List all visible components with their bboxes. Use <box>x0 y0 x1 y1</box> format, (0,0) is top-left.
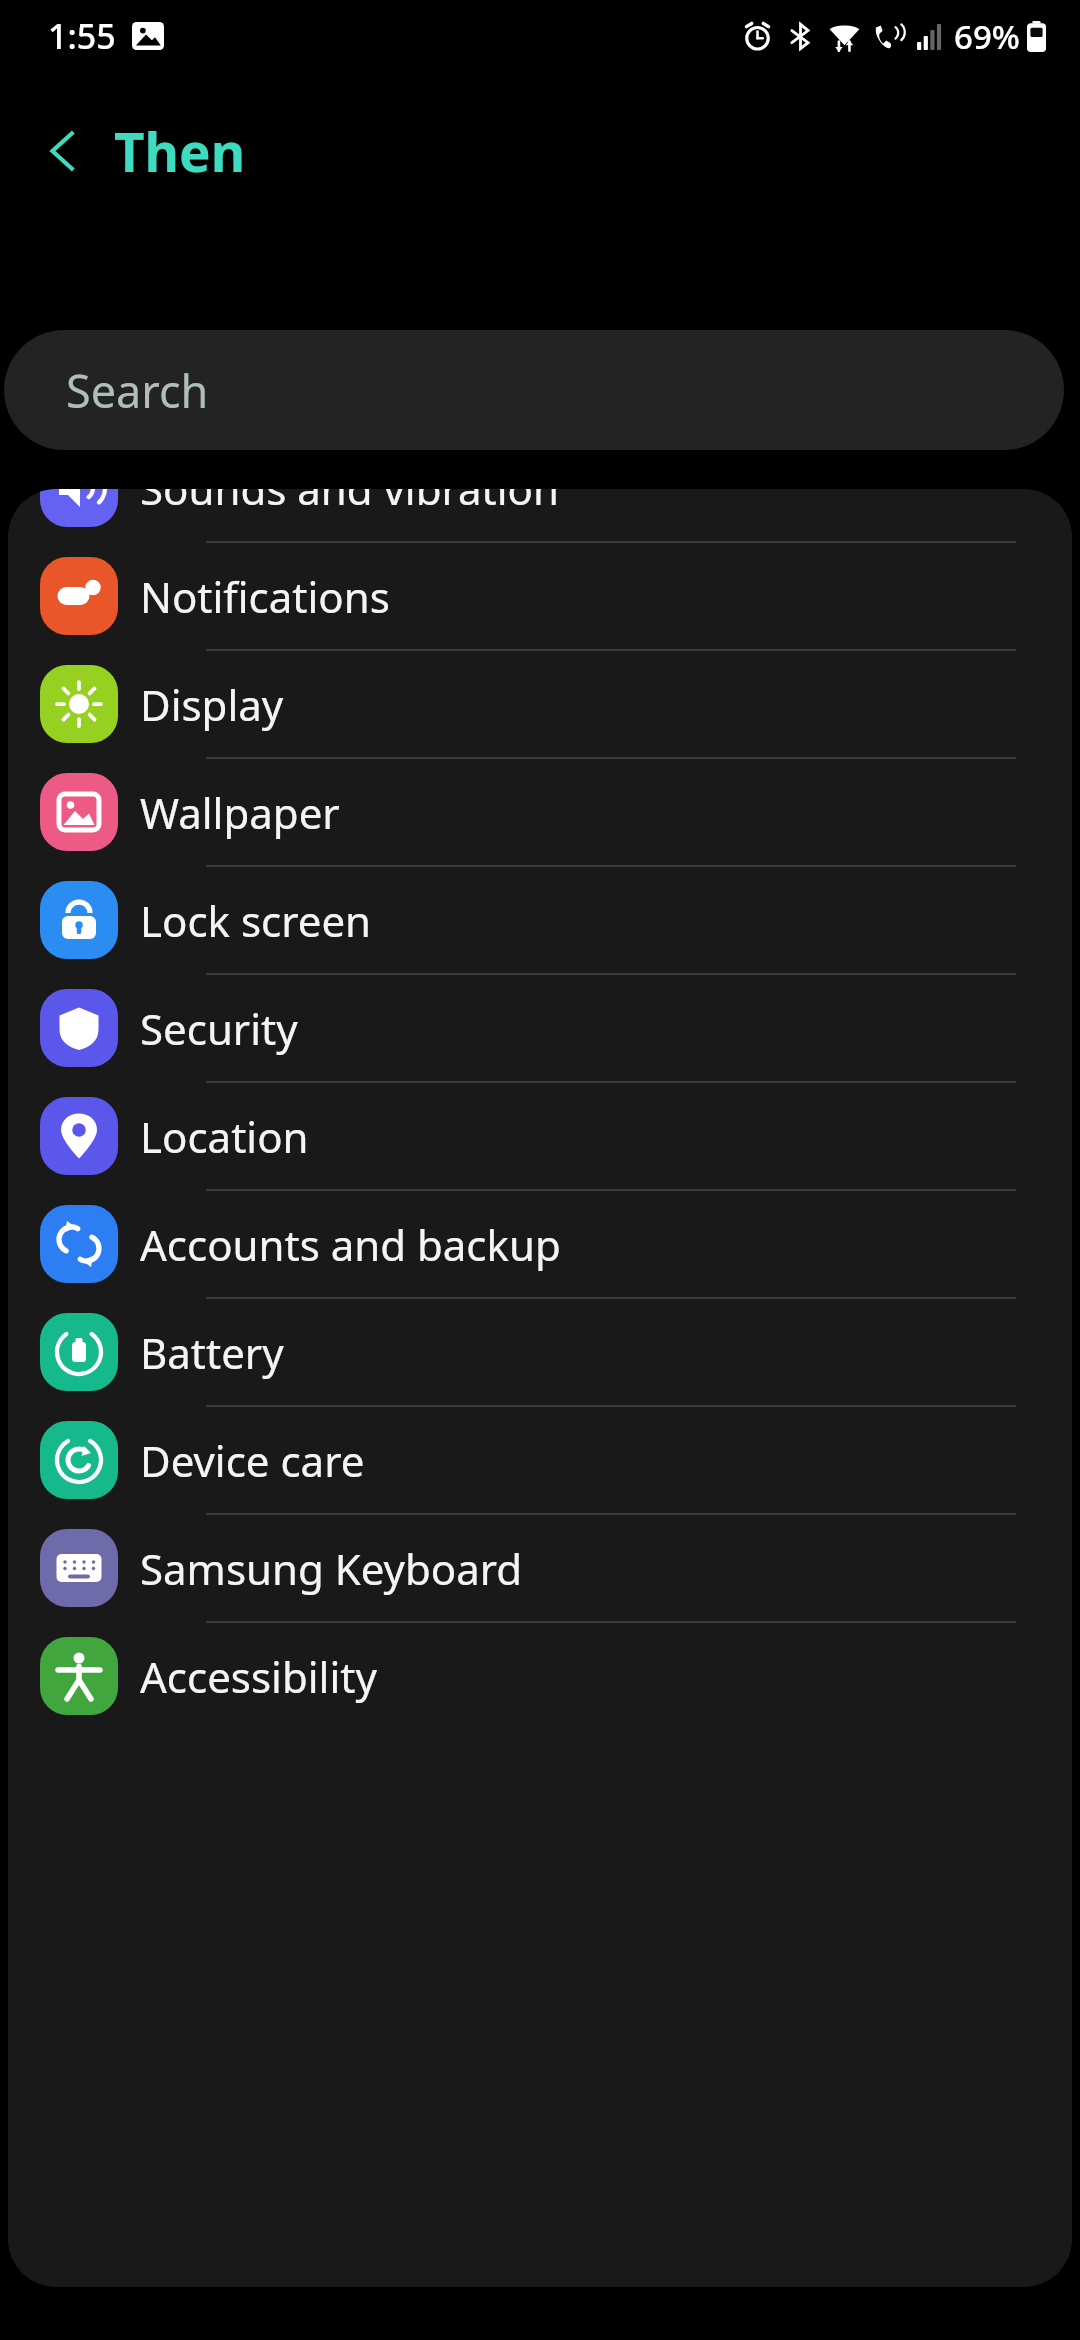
staticText: Notifications <box>140 568 390 625</box>
staticText: Sounds and vibration <box>140 489 559 517</box>
button[interactable]: Location <box>8 1083 1072 1189</box>
staticText: Location <box>140 1108 309 1165</box>
button[interactable]: Battery <box>8 1299 1072 1405</box>
button[interactable]: Device care <box>8 1407 1072 1513</box>
staticText: 1:55 <box>48 13 116 59</box>
staticText: Display <box>140 676 284 733</box>
staticText: Samsung Keyboard <box>140 1540 523 1597</box>
button[interactable]: Sounds and vibration <box>8 489 1072 541</box>
staticText: Wallpaper <box>140 784 340 841</box>
button[interactable]: Notifications <box>8 543 1072 649</box>
button[interactable]: Samsung Keyboard <box>8 1515 1072 1621</box>
staticText: Lock screen <box>140 892 372 949</box>
button[interactable]: Accounts and backup <box>8 1191 1072 1297</box>
staticText: Accounts and backup <box>140 1216 561 1273</box>
staticText: 69% <box>954 14 1020 59</box>
staticText: Device care <box>140 1432 365 1489</box>
button[interactable]: Security <box>8 975 1072 1081</box>
button[interactable]: Accessibility <box>8 1623 1072 1729</box>
staticText: Battery <box>140 1324 284 1381</box>
staticText: Security <box>140 1000 298 1057</box>
button[interactable]: Wallpaper <box>8 759 1072 865</box>
staticText: Accessibility <box>140 1648 377 1705</box>
button[interactable]: Search <box>4 330 1064 450</box>
button[interactable]: Back <box>20 108 106 194</box>
button[interactable]: Lock screen <box>8 867 1072 973</box>
staticText: Search <box>66 360 209 421</box>
button[interactable]: Display <box>8 651 1072 757</box>
staticText: Then <box>114 115 246 187</box>
